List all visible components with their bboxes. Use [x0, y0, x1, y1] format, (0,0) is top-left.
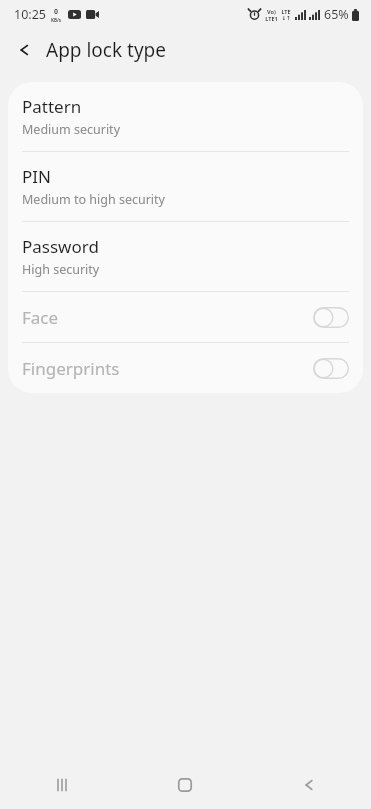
staticText: LTE1	[265, 15, 278, 22]
staticText: 65%	[324, 6, 349, 23]
staticText: Vo)	[267, 8, 276, 15]
staticText: 0	[54, 7, 59, 17]
other: Toggle	[313, 358, 349, 379]
button[interactable]: Home	[123, 761, 247, 809]
button[interactable]: Password	[8, 222, 363, 291]
button[interactable]: Recent apps	[0, 761, 123, 809]
button[interactable]: Back	[247, 761, 371, 809]
staticText: Pattern	[22, 95, 82, 118]
staticText: LTE	[281, 8, 291, 15]
staticText: KB/s	[51, 17, 62, 23]
staticText: Medium to high security	[22, 191, 165, 208]
staticText: Fingerprints	[22, 357, 120, 380]
staticText: App lock type	[46, 37, 167, 63]
button[interactable]: Fingerprints	[8, 343, 363, 393]
staticText: 10:25	[14, 6, 46, 23]
button[interactable]: Face	[8, 292, 363, 342]
staticText: Face	[22, 306, 59, 329]
button[interactable]: Pattern	[8, 82, 363, 151]
other: Toggle	[313, 307, 349, 328]
staticText: PIN	[22, 165, 51, 188]
button[interactable]: PIN	[8, 152, 363, 221]
button[interactable]: Navigate up	[8, 34, 40, 66]
staticText: ↓↑	[281, 15, 291, 21]
staticText: Medium security	[22, 121, 121, 138]
staticText: High security	[22, 261, 100, 278]
staticText: Password	[22, 235, 99, 258]
